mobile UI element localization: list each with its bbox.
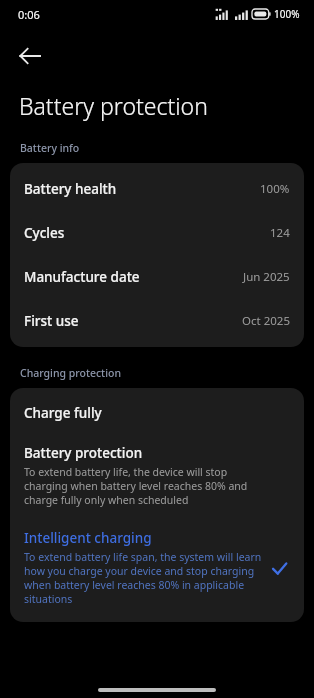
staticText: Charge fully bbox=[24, 404, 102, 422]
button[interactable]: Battery protection bbox=[10, 436, 304, 517]
button[interactable]: Cycles bbox=[10, 211, 304, 255]
button[interactable]: First use bbox=[10, 299, 304, 343]
staticText: Manufacture date bbox=[24, 268, 140, 286]
staticText: Oct 2025 bbox=[242, 313, 290, 329]
staticText: 0:06 bbox=[18, 7, 40, 22]
staticText: First use bbox=[24, 312, 79, 330]
staticText: Battery protection bbox=[24, 444, 143, 462]
button[interactable]: Battery health bbox=[10, 167, 304, 211]
staticText: To extend battery life span, the system … bbox=[24, 550, 264, 606]
staticText: To extend battery life, the device will … bbox=[24, 465, 260, 507]
staticText: Battery protection bbox=[19, 90, 208, 121]
staticText: 124 bbox=[270, 225, 290, 241]
staticText: Jun 2025 bbox=[243, 269, 290, 285]
button[interactable]: Charge fully bbox=[10, 388, 304, 436]
button[interactable]: Back bbox=[8, 34, 52, 78]
button[interactable]: Intelligent charging bbox=[10, 517, 304, 622]
staticText: Charging protection bbox=[20, 366, 121, 380]
staticText: Intelligent charging bbox=[24, 529, 152, 547]
staticText: Battery health bbox=[24, 180, 117, 198]
staticText: 100% bbox=[274, 7, 300, 21]
staticText: Cycles bbox=[24, 224, 65, 242]
staticText: 100% bbox=[260, 181, 290, 197]
button[interactable]: Manufacture date bbox=[10, 255, 304, 299]
staticText: Battery info bbox=[20, 141, 80, 155]
